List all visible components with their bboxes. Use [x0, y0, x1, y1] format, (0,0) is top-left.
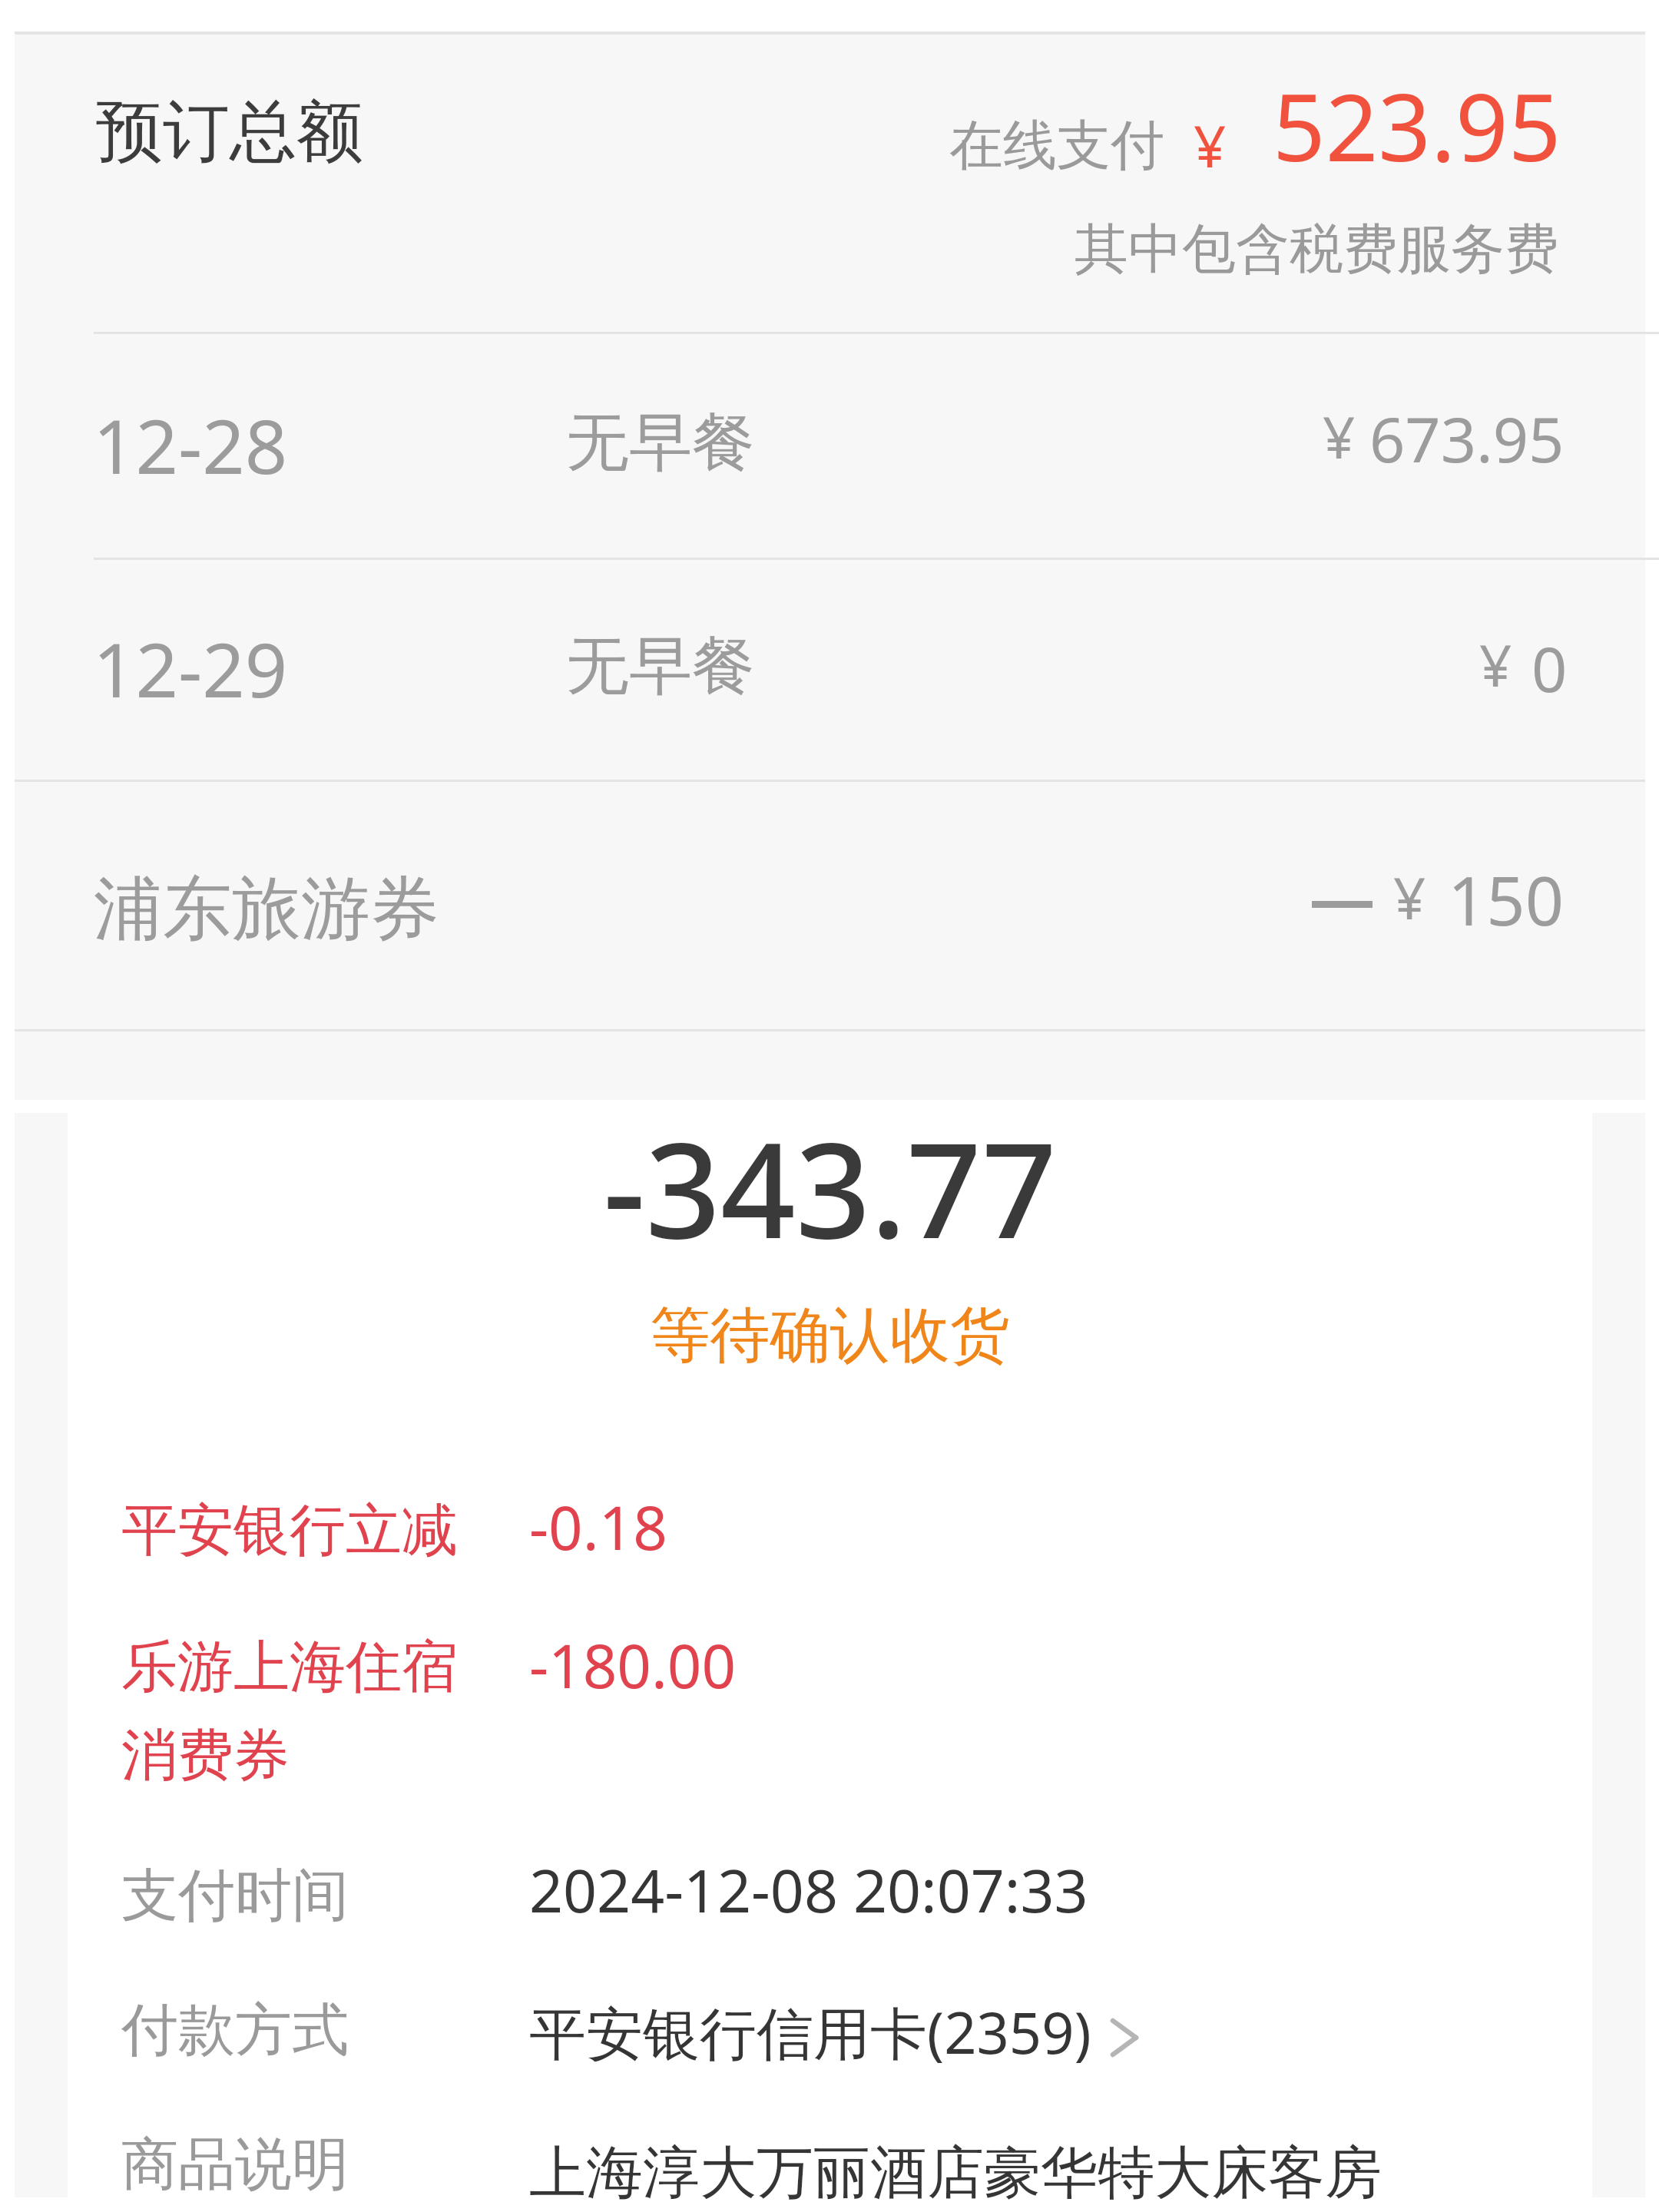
button[interactable]: 商品说明 — [68, 2129, 1592, 2212]
staticText: 在线支付 — [949, 112, 1164, 180]
staticText: 预订总额 — [96, 90, 363, 174]
staticText: 2024-12-08 20:07:33 — [529, 1849, 1088, 1930]
staticText: 无早餐 — [566, 627, 755, 706]
button[interactable]: 浦东旅游券 — [15, 780, 1645, 1029]
staticText: -343.77 — [68, 1098, 1592, 1277]
button[interactable]: 乐游上海住宿 消费券 — [68, 1623, 1592, 1830]
staticText: -180.00 — [529, 1624, 737, 1706]
staticText: 浦东旅游券 — [94, 866, 439, 952]
staticText: ¥ — [1479, 626, 1512, 704]
button[interactable]: 支付时间 — [68, 1860, 1592, 1960]
staticText: -0.18 — [529, 1486, 667, 1568]
staticText: 12-28 — [93, 394, 288, 495]
staticText: 150 — [1448, 853, 1565, 945]
staticText: 商品说明 — [121, 2129, 349, 2200]
staticText: ¥ — [1194, 107, 1227, 184]
staticText: 523.95 — [1273, 63, 1561, 188]
staticText: 乐游上海住宿 消费券 — [121, 1632, 458, 1791]
button[interactable]: 平安银行立减 — [68, 1486, 1592, 1601]
button[interactable]: 付款方式 — [68, 1995, 1592, 2094]
staticText: 平安银行立减 — [121, 1495, 458, 1566]
button[interactable]: Open payment method details — [1111, 2018, 1141, 2049]
staticText: 上海淳大万丽酒店豪华特大床客房 — [529, 2137, 1382, 2209]
staticText: 平安银行信用卡(2359) — [529, 1993, 1091, 2071]
staticText: 其中包含税费服务费 — [1075, 216, 1558, 283]
staticText: 等待确认收货 — [68, 1298, 1592, 1373]
button[interactable]: 12-29 — [15, 558, 1645, 780]
staticText: ¥ — [1393, 859, 1426, 936]
staticText: 付款方式 — [121, 1995, 349, 2066]
staticText: 0 — [1532, 625, 1568, 710]
staticText: 支付时间 — [121, 1860, 349, 1932]
staticText: ¥ — [1323, 398, 1356, 475]
staticText: 12-29 — [93, 618, 288, 719]
button[interactable]: 12-28 — [15, 332, 1645, 558]
staticText: 无早餐 — [566, 403, 755, 482]
staticText: 673.95 — [1369, 396, 1565, 480]
